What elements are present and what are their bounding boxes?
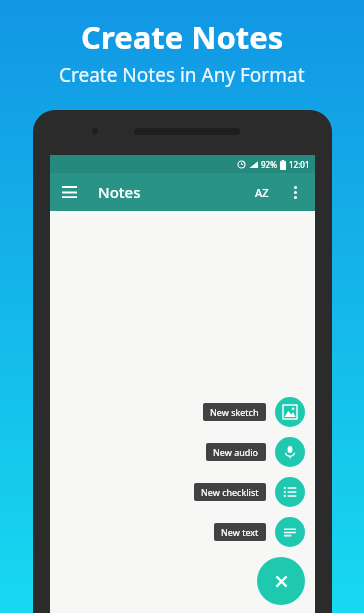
button[interactable]: New checklist <box>194 477 305 507</box>
staticText: Create Notes in Any Format <box>59 62 305 88</box>
staticText: New text <box>221 526 259 538</box>
staticText: New checklist <box>201 486 259 498</box>
staticText: New audio <box>213 446 259 458</box>
button[interactable]: New text <box>214 517 305 547</box>
staticText: 92% <box>261 159 277 170</box>
staticText: Create Notes <box>81 16 284 58</box>
staticText: Notes <box>98 182 141 202</box>
button[interactable]: New sketch <box>203 397 305 427</box>
button[interactable]: Close menu <box>257 557 305 605</box>
button[interactable]: More options <box>279 176 311 208</box>
button[interactable]: New audio <box>206 437 305 467</box>
staticText: AZ <box>255 185 269 200</box>
staticText: New sketch <box>210 406 259 418</box>
staticText: 12:01 <box>289 159 310 170</box>
button[interactable]: Open navigation drawer <box>50 173 88 211</box>
button[interactable]: Sort alphabetically <box>245 175 279 209</box>
